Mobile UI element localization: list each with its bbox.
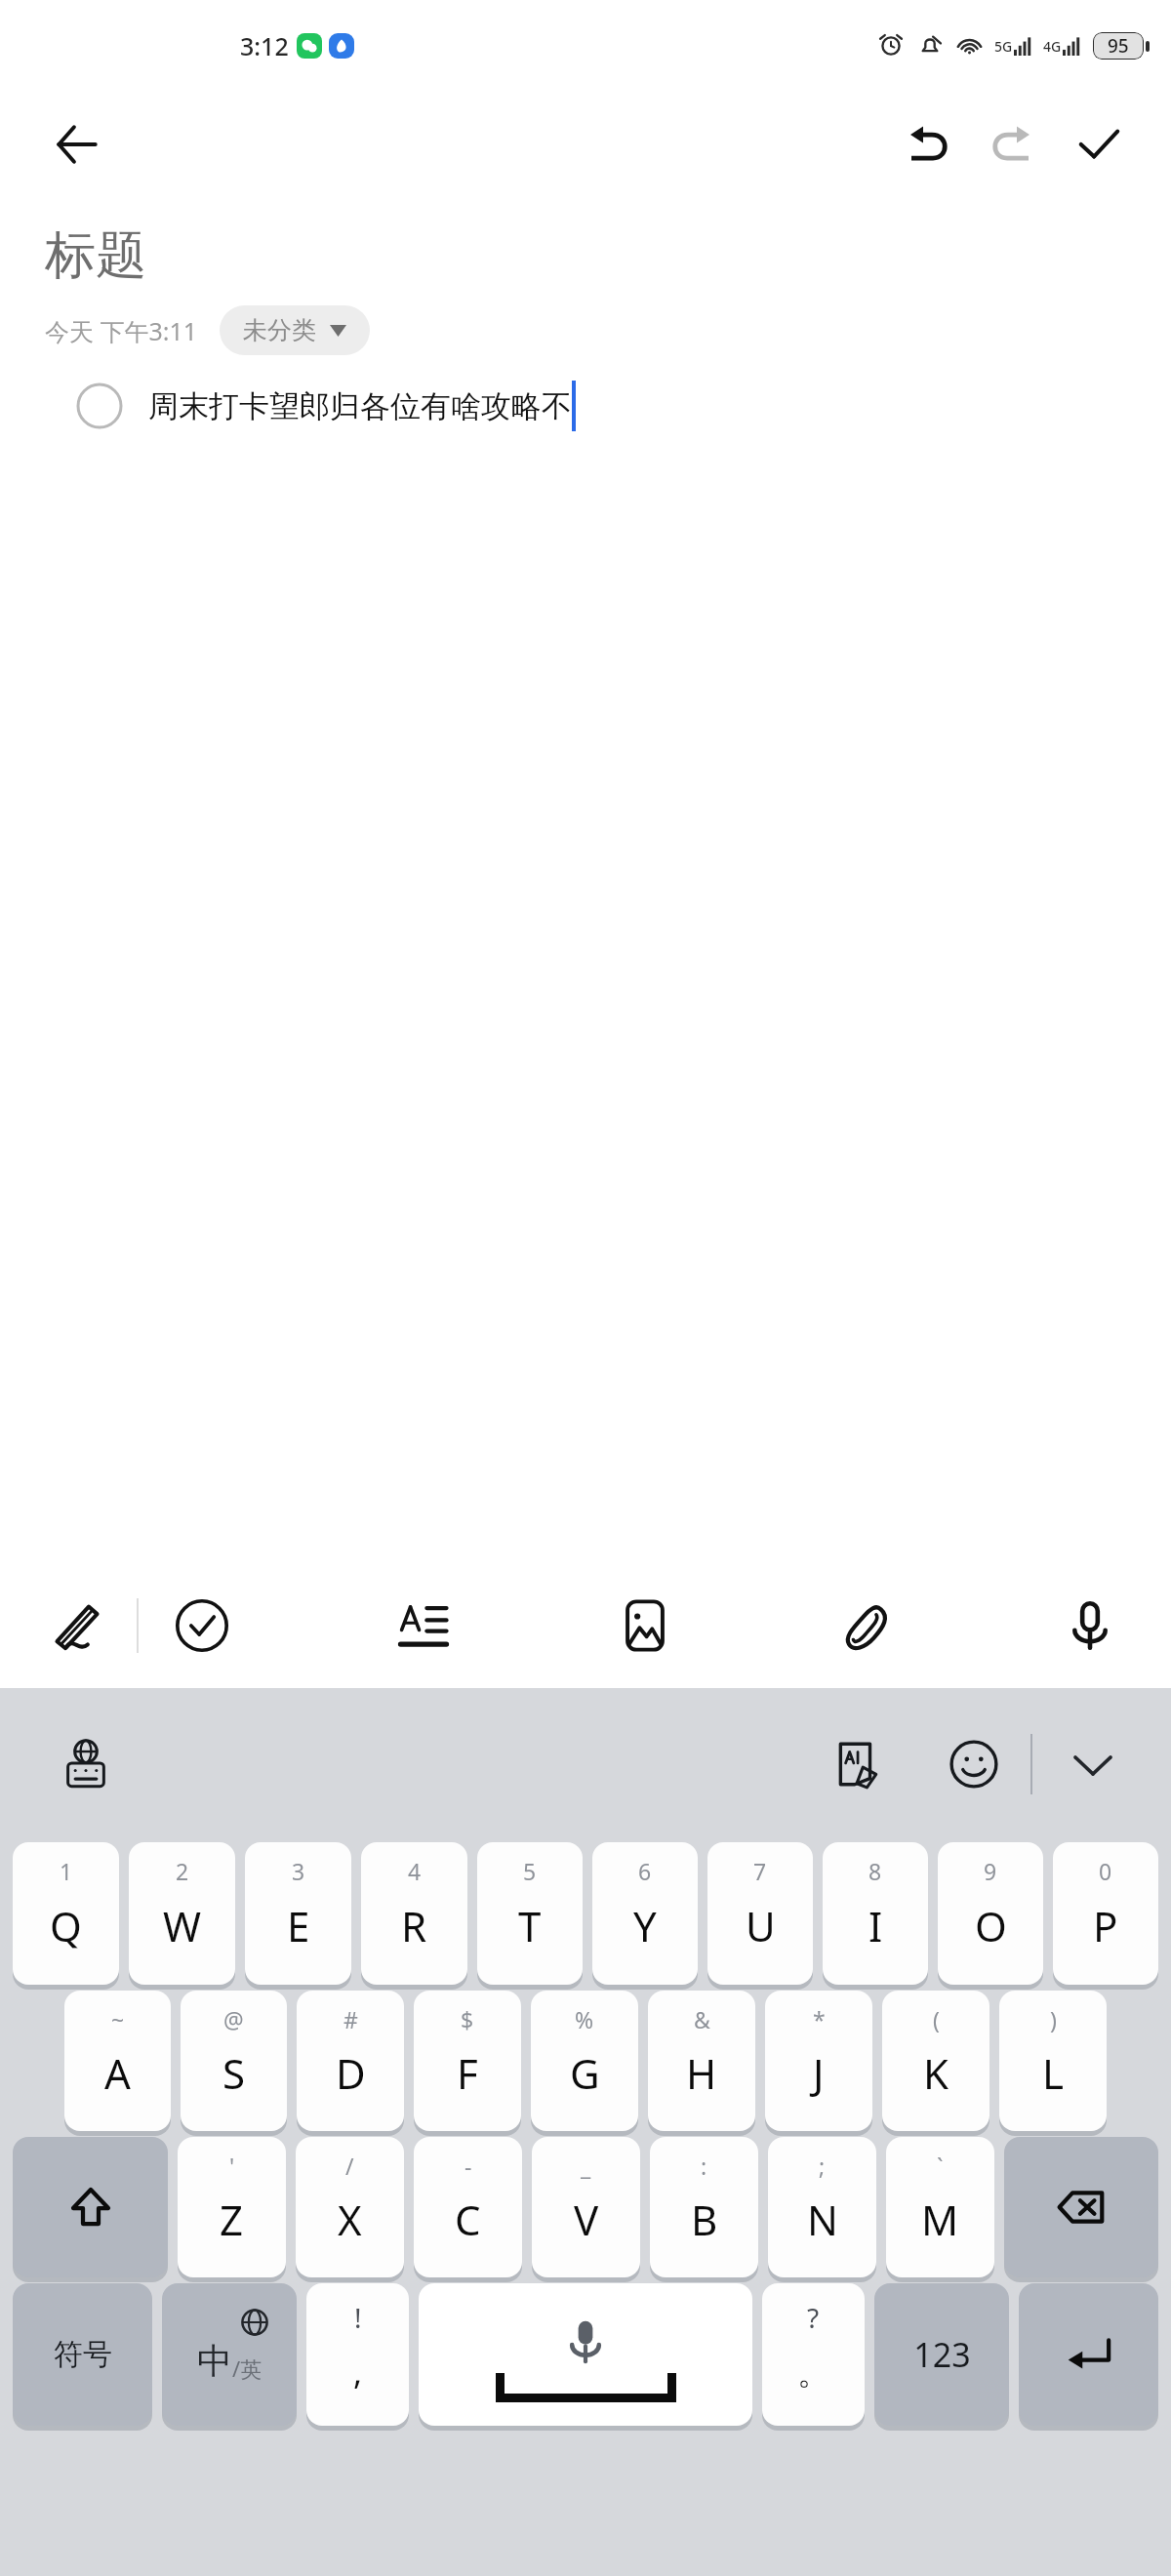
staticText: 符号	[54, 2336, 112, 2373]
staticText: M	[921, 2192, 959, 2247]
button[interactable]: P	[1053, 1842, 1158, 1985]
button[interactable]: Insert image	[603, 1584, 687, 1668]
button[interactable]: H	[648, 1991, 755, 2131]
button[interactable]: Chinese English toggle	[162, 2283, 297, 2426]
staticText: /英	[232, 2354, 262, 2383]
button[interactable]: B	[650, 2137, 758, 2277]
staticText: ;	[819, 2151, 826, 2181]
staticText: A	[104, 2045, 131, 2101]
staticText: 中	[197, 2339, 232, 2383]
button[interactable]: Voice input	[1048, 1584, 1132, 1668]
button[interactable]: O	[938, 1842, 1043, 1985]
staticText: 今天 下午3:11	[45, 314, 198, 347]
staticText: H	[686, 2045, 717, 2101]
staticText: 2	[176, 1856, 189, 1886]
button[interactable]: X	[296, 2137, 404, 2277]
button[interactable]: Text format	[382, 1584, 465, 1668]
staticText: 周末打卡望郎归各位有啥攻略不	[148, 387, 572, 425]
button[interactable]: Emoji	[935, 1725, 1013, 1803]
button[interactable]: Handwriting	[35, 1584, 119, 1668]
staticText: 8	[868, 1856, 882, 1886]
staticText: F	[457, 2045, 478, 2101]
staticText: 1	[60, 1856, 73, 1886]
staticText: W	[163, 1898, 202, 1953]
staticText: K	[923, 2045, 949, 2101]
staticText: ~	[111, 2004, 125, 2034]
button[interactable]: F	[414, 1991, 521, 2131]
button[interactable]: A	[64, 1991, 171, 2131]
button[interactable]: Backspace	[1004, 2137, 1158, 2277]
button[interactable]: 符号	[13, 2283, 152, 2426]
staticText: 标题	[45, 223, 146, 288]
staticText: 3	[292, 1856, 305, 1886]
staticText: 9	[984, 1856, 997, 1886]
staticText: '	[229, 2151, 235, 2181]
button[interactable]: G	[531, 1991, 638, 2131]
button[interactable]: N	[768, 2137, 876, 2277]
button[interactable]: Undo	[884, 101, 970, 187]
staticText: 0	[1099, 1856, 1112, 1886]
staticText: 3:12	[240, 29, 289, 62]
staticText: O	[975, 1898, 1007, 1953]
staticText: 。	[797, 2352, 830, 2394]
staticText: 5G	[994, 37, 1013, 56]
button[interactable]: 123	[874, 2283, 1009, 2426]
button[interactable]: AI writing	[818, 1725, 896, 1803]
button[interactable]: ,	[306, 2283, 409, 2426]
staticText: ?	[807, 2299, 820, 2336]
button[interactable]: M	[886, 2137, 994, 2277]
staticText: B	[691, 2192, 718, 2247]
button[interactable]: Y	[592, 1842, 698, 1985]
button[interactable]: 未分类	[220, 305, 370, 355]
button[interactable]: L	[999, 1991, 1107, 2131]
button[interactable]: Attach file	[826, 1584, 909, 1668]
staticText: 4G	[1043, 37, 1062, 56]
button[interactable]: Redo	[970, 101, 1056, 187]
button[interactable]: S	[181, 1991, 287, 2131]
staticText: *	[813, 2004, 826, 2034]
staticText: Y	[633, 1898, 657, 1953]
button[interactable]: 周末打卡望郎归各位有啥攻略不	[0, 377, 1171, 435]
button[interactable]: Space	[419, 2283, 752, 2426]
button[interactable]: Q	[13, 1842, 119, 1985]
button[interactable]: Back	[39, 107, 113, 181]
button[interactable]: V	[532, 2137, 640, 2277]
button[interactable]: Shift	[13, 2137, 168, 2277]
staticText: L	[1042, 2045, 1065, 2101]
button[interactable]: T	[477, 1842, 583, 1985]
staticText: 4	[408, 1856, 422, 1886]
button[interactable]: Enter	[1019, 2283, 1158, 2426]
button[interactable]: U	[707, 1842, 813, 1985]
button[interactable]: J	[765, 1991, 872, 2131]
staticText: !	[354, 2299, 362, 2336]
staticText: E	[287, 1898, 310, 1953]
button[interactable]: 。	[762, 2283, 865, 2426]
staticText: $	[461, 2004, 474, 2034]
button[interactable]: D	[297, 1991, 404, 2131]
staticText: 123	[913, 2332, 971, 2377]
staticText: Q	[50, 1898, 82, 1953]
staticText: P	[1093, 1898, 1118, 1953]
staticText: R	[401, 1898, 427, 1953]
button[interactable]: E	[245, 1842, 351, 1985]
button[interactable]: C	[414, 2137, 522, 2277]
staticText: Z	[220, 2192, 244, 2247]
button[interactable]: Done	[1056, 101, 1142, 187]
button[interactable]: R	[361, 1842, 467, 1985]
button[interactable]: K	[882, 1991, 989, 2131]
staticText: D	[336, 2045, 366, 2101]
staticText: :	[701, 2151, 707, 2181]
staticText: G	[570, 2045, 600, 2101]
staticText: 95	[1108, 33, 1129, 59]
staticText: 7	[753, 1856, 767, 1886]
staticText: 6	[638, 1856, 652, 1886]
button[interactable]: Hide keyboard	[1054, 1725, 1132, 1803]
staticText: N	[807, 2192, 838, 2247]
staticText: &	[694, 2004, 710, 2034]
button[interactable]: Switch language	[47, 1725, 125, 1803]
button[interactable]: I	[823, 1842, 928, 1985]
button[interactable]: Z	[178, 2137, 286, 2277]
button[interactable]: Checklist	[160, 1584, 244, 1668]
staticText: /	[345, 2151, 354, 2181]
button[interactable]: W	[129, 1842, 235, 1985]
